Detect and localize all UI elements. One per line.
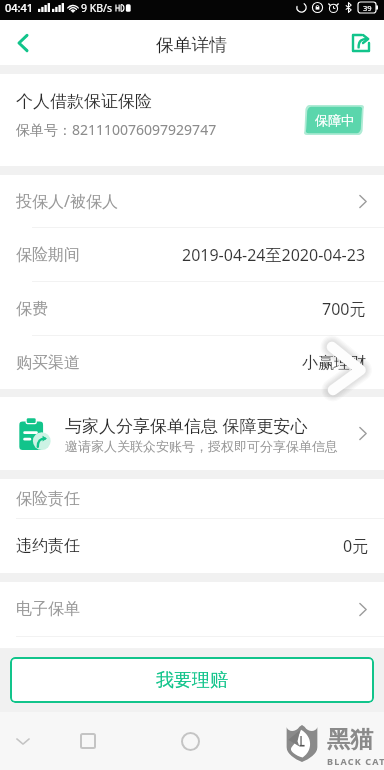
staticText: 700元	[322, 298, 366, 320]
staticText: 保险责任	[16, 489, 80, 509]
button[interactable]: Share	[338, 20, 384, 65]
button[interactable]: 投保人/被保人	[0, 175, 384, 228]
button[interactable]: Home	[65, 712, 110, 770]
staticText: 小赢理财	[302, 353, 366, 373]
button[interactable]: Back	[0, 712, 45, 770]
button[interactable]: 保险期间	[0, 228, 384, 282]
staticText: 39	[363, 3, 372, 13]
button[interactable]: Back	[0, 20, 46, 65]
staticText: 2019-04-24至2020-04-23	[182, 244, 366, 266]
staticText: 个人借款保证保险	[16, 91, 152, 112]
staticText: 违约责任	[16, 536, 80, 556]
staticText: 黑猫	[327, 725, 373, 754]
staticText: 04:41	[5, 0, 34, 15]
staticText: 保单号：821110076097929747	[16, 120, 217, 139]
button[interactable]: 与家人分享保单信息 保障更安心	[0, 397, 384, 470]
staticText: 保障中	[315, 112, 354, 128]
button[interactable]: 电子保单	[0, 582, 384, 636]
button[interactable]: 保费	[0, 282, 384, 336]
staticText: 与家人分享保单信息 保障更安心	[65, 414, 308, 437]
staticText: 保费	[16, 299, 48, 319]
staticText: 购买渠道	[16, 353, 80, 373]
staticText: 保单详情	[156, 34, 228, 56]
staticText: 我要理赔	[156, 669, 228, 692]
staticText: 0元	[343, 535, 369, 557]
button[interactable]: 我要理赔	[10, 657, 374, 703]
staticText: 保险期间	[16, 245, 80, 265]
staticText: 投保人/被保人	[16, 190, 118, 212]
button[interactable]: 购买渠道	[0, 336, 384, 389]
button[interactable]: Recents	[168, 712, 213, 770]
staticText: 9 KB/s	[81, 1, 112, 15]
staticText: BLACK CAT	[327, 755, 384, 767]
staticText: 邀请家人关联众安账号，授权即可分享保单信息	[65, 438, 338, 454]
staticText: 电子保单	[16, 599, 80, 619]
